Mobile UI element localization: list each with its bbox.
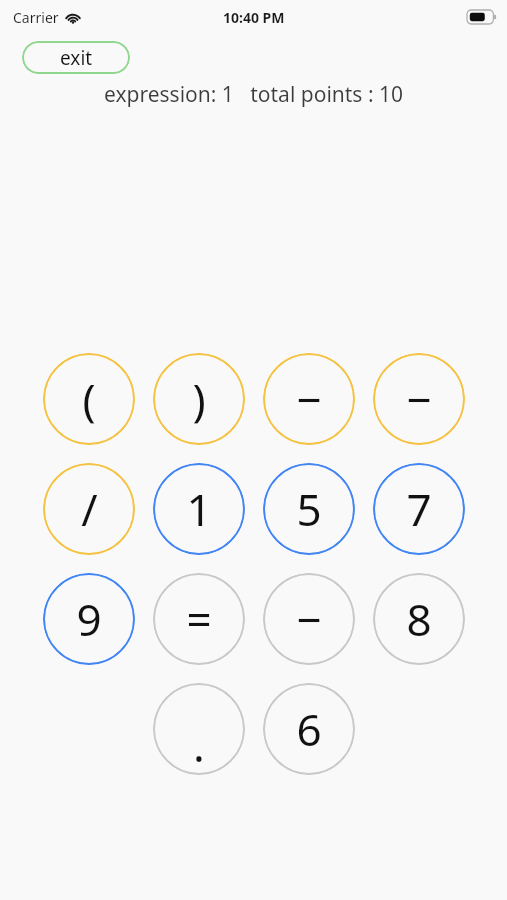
staticText: )	[192, 369, 206, 429]
button[interactable]: −	[263, 353, 355, 445]
staticText: 1	[186, 479, 212, 539]
button[interactable]: .	[153, 683, 245, 775]
button[interactable]: 5	[263, 463, 355, 555]
staticText: 8	[406, 589, 432, 649]
staticText: =	[186, 589, 212, 649]
button[interactable]: =	[153, 573, 245, 665]
staticText: −	[296, 589, 322, 649]
button[interactable]: 9	[43, 573, 135, 665]
staticText: 7	[406, 479, 432, 539]
staticText: /	[81, 479, 98, 539]
staticText: expression: 1 total points : 10	[104, 80, 403, 109]
staticText: exit	[60, 45, 93, 71]
button[interactable]: −	[263, 573, 355, 665]
staticText: 10:40 PM	[223, 8, 285, 27]
staticText: 6	[296, 699, 322, 759]
button[interactable]: )	[153, 353, 245, 445]
staticText: .	[193, 715, 205, 775]
button[interactable]: exit	[22, 41, 130, 74]
staticText: 5	[296, 479, 322, 539]
button[interactable]: 1	[153, 463, 245, 555]
button[interactable]: (	[43, 353, 135, 445]
staticText: (	[82, 369, 96, 429]
staticText: −	[406, 369, 432, 429]
staticText: −	[296, 369, 322, 429]
staticText: Carrier	[13, 8, 59, 27]
staticText: 9	[76, 589, 102, 649]
button[interactable]: /	[43, 463, 135, 555]
button[interactable]: 6	[263, 683, 355, 775]
button[interactable]: −	[373, 353, 465, 445]
button[interactable]: 8	[373, 573, 465, 665]
button[interactable]: 7	[373, 463, 465, 555]
